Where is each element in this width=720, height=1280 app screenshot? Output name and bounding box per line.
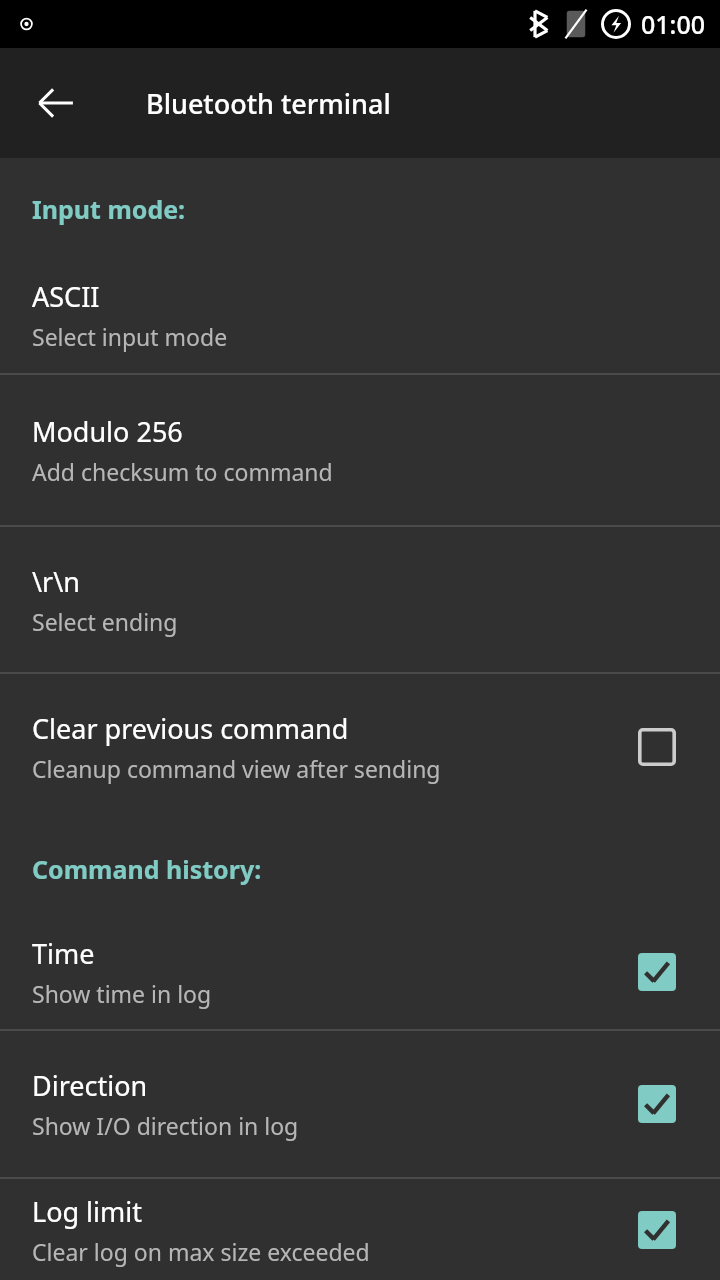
staticText: Input mode: (32, 192, 186, 226)
staticText: Show time in log (32, 978, 212, 1009)
staticText: 01:00 (641, 7, 706, 41)
button[interactable]: Clear previous command (0, 674, 720, 820)
button[interactable]: Time (0, 914, 720, 1029)
staticText: Select ending (32, 606, 178, 637)
button[interactable]: Toggle, on (638, 953, 676, 991)
staticText: Select input mode (32, 321, 228, 352)
staticText: \r\n (32, 563, 80, 600)
staticText: Bluetooth terminal (146, 85, 391, 122)
button[interactable]: Log limit (0, 1179, 720, 1280)
button[interactable]: Back (22, 69, 90, 137)
staticText: Show I/O direction in log (32, 1110, 299, 1141)
staticText: ASCII (32, 278, 100, 315)
button[interactable]: \r\n (0, 527, 720, 672)
staticText: Log limit (32, 1193, 142, 1230)
button[interactable]: Toggle, on (638, 1211, 676, 1249)
staticText: Direction (32, 1067, 148, 1104)
staticText: Command history: (32, 852, 262, 886)
button[interactable]: Modulo 256 (0, 375, 720, 525)
staticText: Clear log on max size exceeded (32, 1236, 370, 1267)
button[interactable]: ASCII (0, 256, 720, 373)
staticText: Time (32, 935, 95, 972)
staticText: Clear previous command (32, 710, 349, 747)
staticText: Add checksum to command (32, 456, 333, 487)
button[interactable]: Toggle, off (638, 728, 676, 766)
staticText: Cleanup command view after sending (32, 753, 441, 784)
button[interactable]: Toggle, on (638, 1085, 676, 1123)
button[interactable]: Direction (0, 1031, 720, 1177)
staticText: Modulo 256 (32, 413, 183, 450)
